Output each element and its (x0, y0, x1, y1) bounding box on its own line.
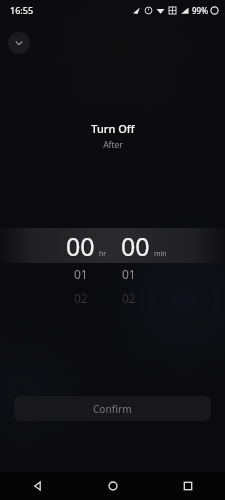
staticText: Turn Off (91, 121, 135, 136)
button[interactable]: Back (0, 472, 75, 500)
button[interactable]: Confirm (14, 396, 211, 421)
button[interactable]: 02 (122, 290, 136, 306)
staticText: 00 (121, 229, 150, 263)
button[interactable]: Collapse (8, 32, 30, 54)
button[interactable] (0, 228, 225, 263)
staticText: hr (99, 249, 107, 259)
staticText: After (103, 139, 123, 151)
button[interactable]: 02 (74, 290, 88, 306)
button[interactable]: 01 (74, 266, 88, 282)
staticText: 00 (66, 229, 95, 263)
staticText: 99% (192, 5, 208, 16)
staticText: min (154, 249, 167, 259)
staticText: 16:55 (10, 4, 34, 16)
button[interactable]: 01 (122, 266, 136, 282)
staticText: Confirm (93, 402, 132, 416)
button[interactable]: Home (75, 472, 150, 500)
button[interactable]: Recent apps (150, 472, 225, 500)
